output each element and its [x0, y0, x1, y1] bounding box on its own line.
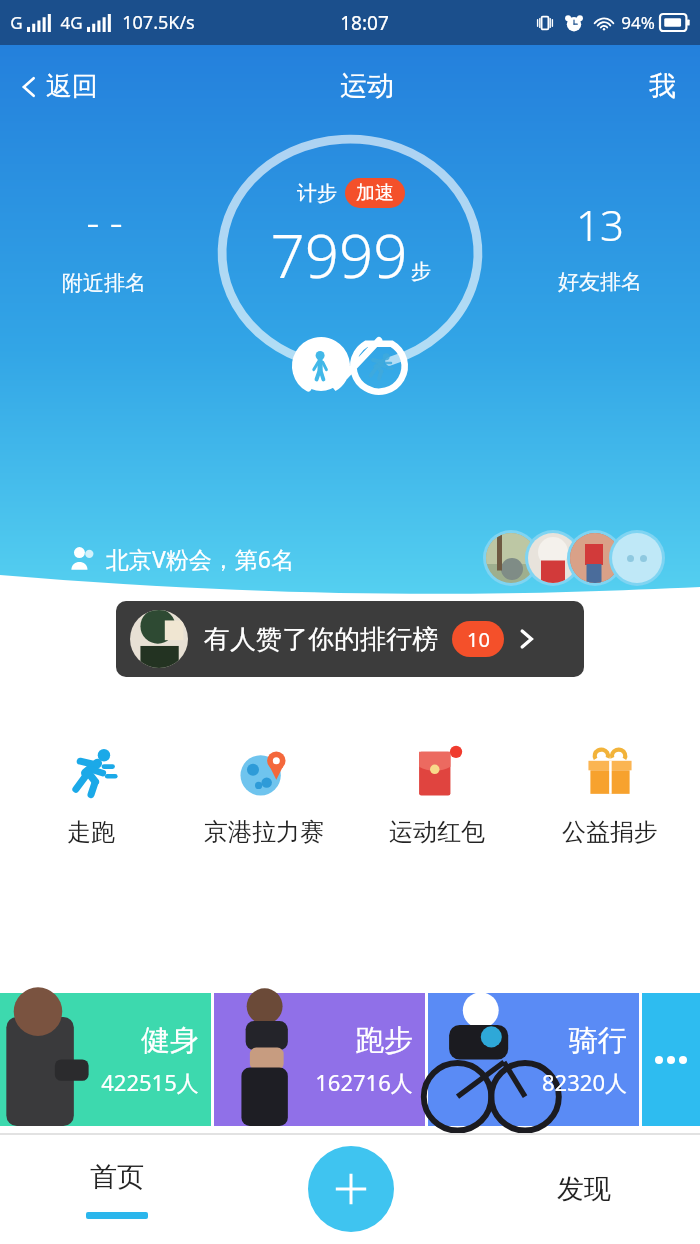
staticText: 18:07 [340, 10, 389, 36]
staticText: 返回 [46, 70, 98, 103]
staticText: 107.5K/s [122, 10, 195, 35]
staticText: 跑步 [355, 1022, 413, 1059]
staticText: 运动红包 [389, 817, 485, 847]
staticText: 北京V粉会，第6名 [106, 543, 294, 574]
staticText: 首页 [90, 1160, 144, 1194]
staticText: 加速 [356, 181, 394, 205]
staticText: 健身 [141, 1022, 199, 1059]
button[interactable]: 运动红包 [350, 737, 523, 853]
button[interactable]: 首页 [0, 1134, 234, 1244]
button[interactable]: 走跑 [4, 737, 177, 853]
staticText: 13 [576, 196, 624, 253]
staticText: 94% [621, 11, 655, 34]
staticText: 162716人 [315, 1067, 413, 1097]
button[interactable]: Switch walk or run mode [292, 337, 408, 395]
staticText: 附近排名 [62, 270, 146, 296]
button[interactable]: 跑步 [214, 993, 425, 1126]
staticText: 骑行 [569, 1022, 627, 1059]
staticText: 有人赞了你的排行榜 [204, 623, 438, 656]
button[interactable]: 健身 [0, 993, 211, 1126]
button[interactable]: 返回 [0, 62, 110, 111]
staticText: - - [86, 194, 123, 248]
button[interactable]: 北京V粉会，第6名 [0, 527, 700, 589]
button[interactable]: 我 [625, 61, 700, 111]
staticText: 好友排名 [558, 269, 642, 295]
staticText: G [10, 11, 23, 34]
staticText: 计步 [297, 181, 337, 206]
button[interactable]: 骑行 [428, 993, 639, 1126]
button[interactable]: 公益捐步 [523, 737, 696, 853]
staticText: 走跑 [67, 817, 115, 847]
button[interactable]: 加速 [345, 178, 405, 208]
button[interactable]: 有人赞了你的排行榜 [116, 601, 584, 677]
staticText: 步 [411, 259, 431, 284]
staticText: 我 [649, 69, 676, 103]
staticText: 422515人 [101, 1067, 199, 1097]
staticText: 7999 [270, 214, 408, 296]
button[interactable]: 京港拉力赛 [177, 737, 350, 853]
staticText: 10 [467, 626, 490, 653]
button[interactable] [483, 530, 668, 586]
staticText: 82320人 [542, 1067, 627, 1097]
staticText: 4G [60, 11, 83, 34]
staticText: 运动 [340, 69, 394, 103]
button[interactable]: More categories [642, 993, 700, 1126]
staticText: 发现 [557, 1172, 611, 1206]
button[interactable]: Add [308, 1146, 394, 1232]
staticText: 京港拉力赛 [204, 817, 324, 847]
staticText: 公益捐步 [562, 817, 658, 847]
button[interactable]: 发现 [467, 1134, 700, 1244]
